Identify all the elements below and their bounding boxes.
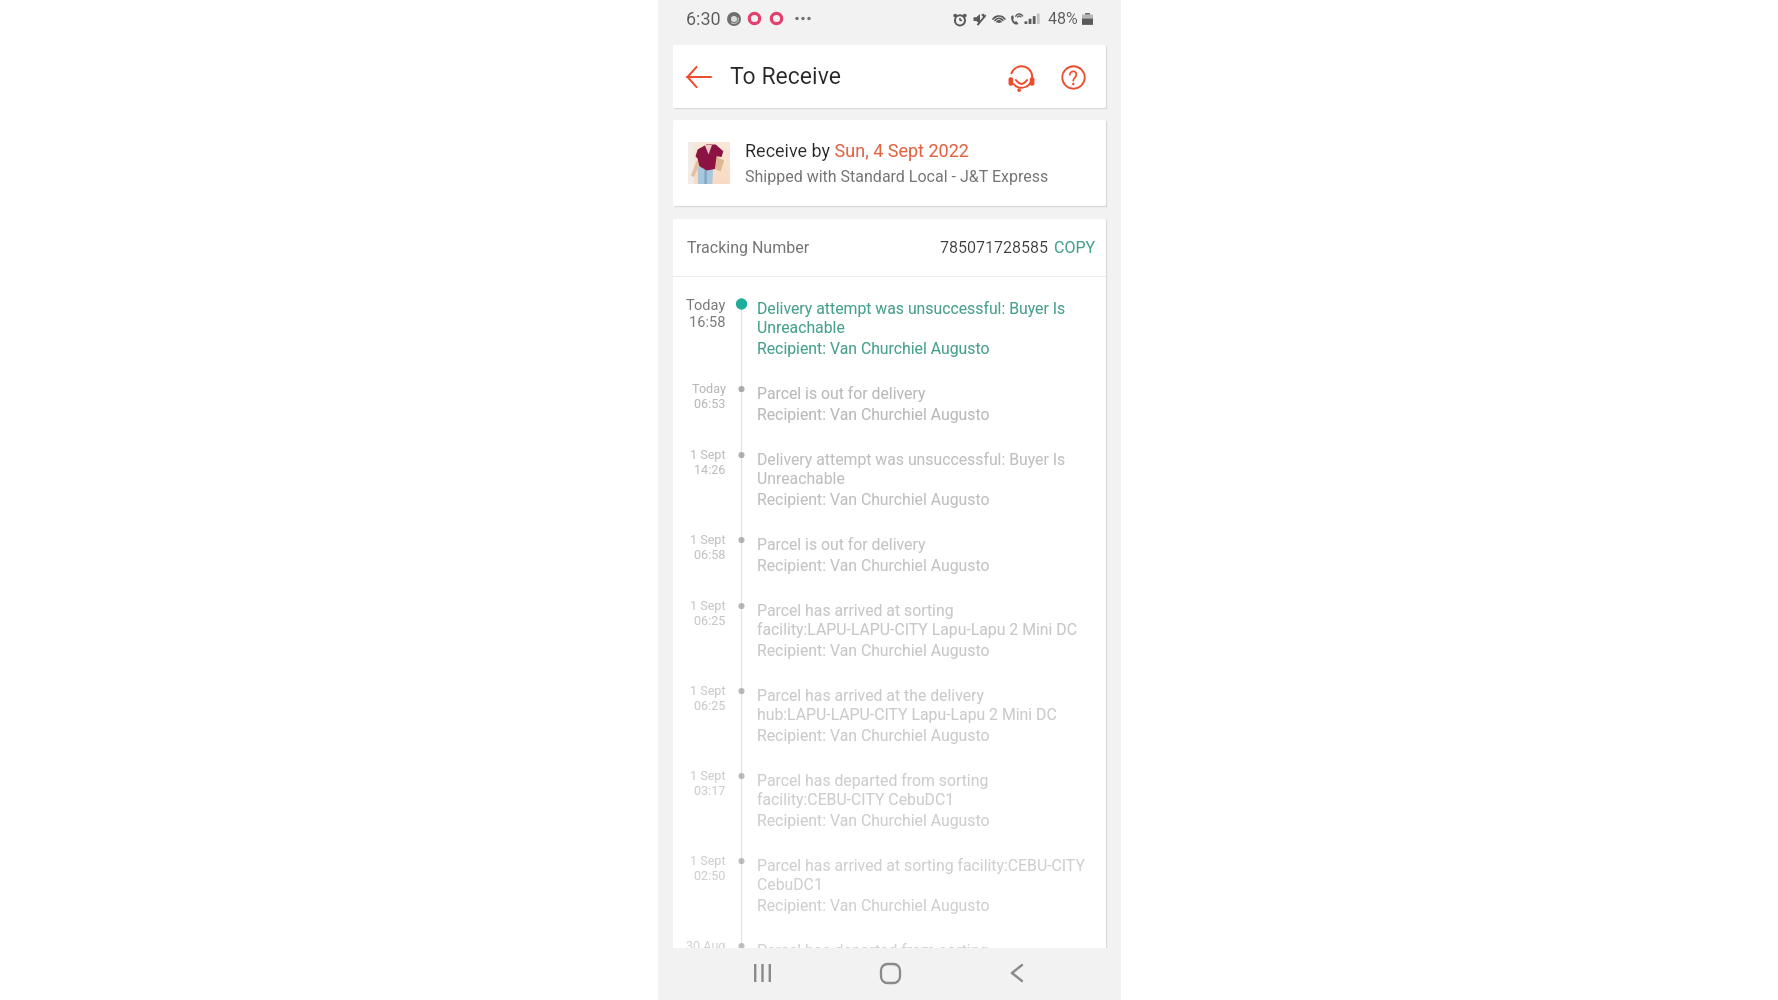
staticText: Recipient: Van Churchiel Augusto	[757, 490, 990, 509]
staticText: 03:17	[694, 783, 726, 798]
staticText: Recipient: Van Churchiel Augusto	[757, 896, 990, 915]
staticText: Recipient: Van Churchiel Augusto	[757, 981, 990, 982]
button[interactable]: 1 Sept	[673, 763, 1106, 848]
button[interactable]: Receive by Sun, 4 Sept 2022	[673, 120, 1106, 206]
staticText: Parcel has arrived at sorting facility:L…	[757, 601, 1077, 639]
staticText: 1 Sept	[690, 532, 726, 547]
staticText: Parcel has arrived at the delivery hub:L…	[757, 686, 1057, 724]
staticText: Parcel is out for delivery	[757, 535, 926, 554]
button[interactable]: 1 Sept	[673, 678, 1106, 763]
staticText: 48%	[1048, 9, 1078, 28]
staticText: 1 Sept	[690, 853, 726, 868]
button[interactable]: 1 Sept	[673, 848, 1106, 933]
staticText: Recipient: Van Churchiel Augusto	[757, 811, 990, 830]
button[interactable]: Chat support	[999, 55, 1043, 99]
button[interactable]: Recent apps	[738, 949, 786, 997]
staticText: Parcel is out for delivery	[757, 384, 926, 403]
button[interactable]: Home	[866, 949, 914, 997]
button[interactable]: Back	[993, 949, 1041, 997]
button[interactable]: Today	[673, 376, 1106, 442]
button[interactable]: Help	[1051, 55, 1095, 99]
staticText: 6:30	[686, 8, 721, 29]
staticText: 06:58	[694, 547, 726, 562]
staticText: 1 Sept	[690, 683, 726, 698]
staticText: 785071728585	[940, 238, 1048, 257]
staticText: Delivery attempt was unsuccessful: Buyer…	[757, 299, 1066, 337]
staticText: Recipient: Van Churchiel Augusto	[757, 726, 990, 745]
staticText: 30 Aug	[686, 938, 726, 953]
staticText: Parcel has departed from sorting facilit…	[757, 771, 989, 809]
staticText: To Receive	[730, 63, 841, 90]
staticText: 06:25	[694, 698, 726, 713]
button[interactable]: 1 Sept	[673, 442, 1106, 527]
staticText: Parcel has arrived at sorting facility:C…	[757, 856, 1085, 894]
staticText: 06:53	[694, 396, 726, 411]
staticText: 06:25	[694, 613, 726, 628]
staticText: Tracking Number	[687, 238, 810, 257]
staticText: 02:50	[694, 868, 726, 883]
staticText: Recipient: Van Churchiel Augusto	[757, 556, 990, 575]
button[interactable]: 1 Sept	[673, 593, 1106, 678]
staticText: 1 Sept	[690, 768, 726, 783]
staticText: Today	[686, 296, 726, 313]
staticText: Today	[692, 381, 726, 396]
button[interactable]: 30 Aug	[673, 933, 1106, 1000]
staticText: 1 Sept	[690, 447, 726, 462]
button[interactable]: 1 Sept	[673, 527, 1106, 593]
staticText: COPY	[1054, 238, 1096, 257]
staticText: Parcel has departed from sorting facilit…	[757, 941, 989, 979]
staticText: Recipient: Van Churchiel Augusto	[757, 641, 990, 660]
staticText: Receive by Sun, 4 Sept 2022	[745, 140, 969, 161]
staticText: 16:58	[689, 313, 726, 330]
staticText: Recipient: Van Churchiel Augusto	[757, 405, 990, 424]
staticText: Delivery attempt was unsuccessful: Buyer…	[757, 450, 1066, 488]
staticText: 14:26	[694, 462, 726, 477]
staticText: 1 Sept	[690, 598, 726, 613]
button[interactable]: Today	[673, 291, 1106, 376]
button[interactable]: COPY	[1054, 238, 1096, 257]
staticText: Shipped with Standard Local - J&T Expres…	[745, 167, 1049, 186]
button[interactable]: Back	[673, 51, 725, 103]
staticText: Recipient: Van Churchiel Augusto	[757, 339, 990, 358]
